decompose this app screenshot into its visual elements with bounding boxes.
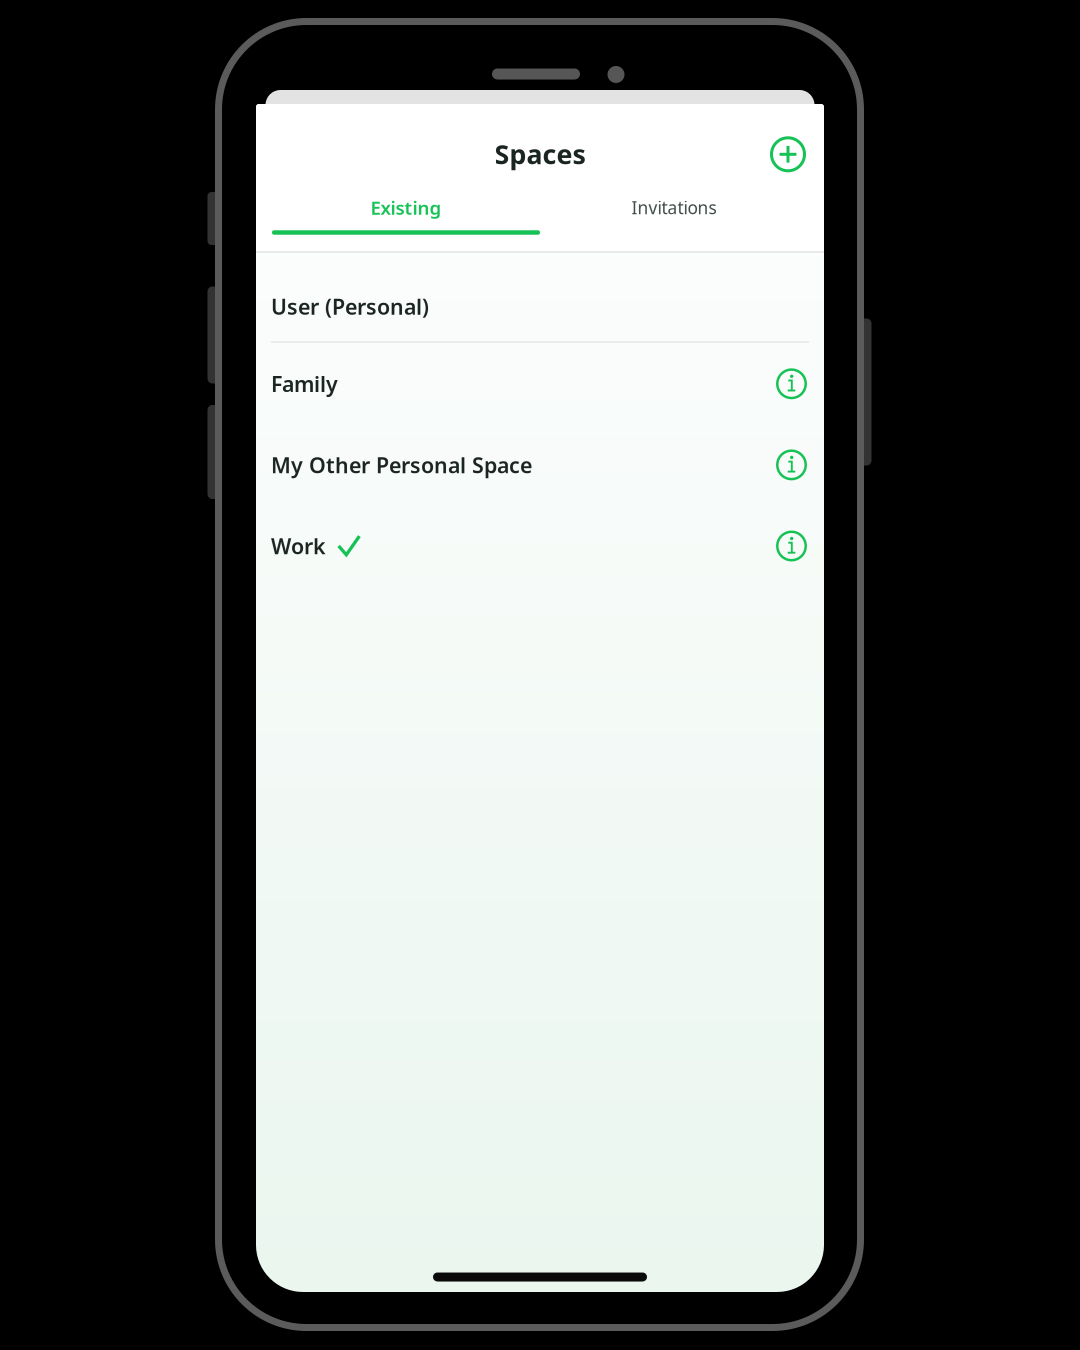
button[interactable]: Existing [272, 178, 540, 250]
button[interactable]: User (Personal) [256, 253, 824, 342]
staticText: Work [271, 532, 326, 560]
staticText: Spaces [494, 136, 585, 172]
staticText: Invitations [631, 196, 716, 219]
staticText: Existing [370, 195, 441, 220]
staticText: User (Personal) [271, 292, 429, 321]
button[interactable]: Invitations [540, 178, 808, 250]
staticText: My Other Personal Space [271, 451, 532, 479]
button[interactable]: Family [256, 343, 824, 424]
button[interactable]: My Other Personal Space [256, 424, 824, 505]
button[interactable]: Add space [761, 127, 815, 181]
button[interactable]: Work [256, 505, 824, 587]
staticText: Family [271, 370, 338, 398]
